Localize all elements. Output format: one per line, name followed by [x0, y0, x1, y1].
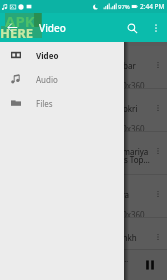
- button[interactable]: Audio: [0, 67, 124, 91]
- staticText: Video: [39, 21, 66, 35]
- staticText: Aankh: [113, 232, 137, 243]
- button[interactable]: Back: [0, 15, 25, 40]
- staticText: 2:44 PM: [140, 2, 165, 11]
- staticText: Dilbar: [113, 60, 136, 71]
- staticText: Video: [36, 50, 59, 61]
- staticText: 640x360: [113, 80, 145, 89]
- staticText: 97%: [118, 3, 130, 11]
- staticText: HERE: [0, 24, 34, 42]
- staticText: Chokri: [113, 103, 138, 114]
- button[interactable]: Files: [0, 91, 124, 115]
- button[interactable]: Pause: [139, 254, 161, 276]
- staticText: 640x360: [113, 209, 145, 218]
- button[interactable]: Aankh: [0, 218, 167, 261]
- staticText: Dilbar Dilbar Video Song: [54, 254, 132, 264]
- staticText: 640x360: [113, 123, 145, 132]
- staticText: Files: [36, 98, 53, 109]
- button[interactable]: More options: [150, 218, 167, 261]
- staticText: Tera: [113, 189, 130, 200]
- button[interactable]: Video: [0, 43, 124, 67]
- staticText: Audio: [36, 74, 58, 85]
- button[interactable]: Tera: [0, 175, 167, 218]
- button[interactable]: Dilbar: [0, 46, 167, 89]
- staticText: APK: [5, 11, 35, 31]
- staticText: 640x360: [113, 252, 145, 261]
- button[interactable]: Search: [119, 15, 145, 41]
- button[interactable]: Chokri: [0, 89, 167, 132]
- button[interactable]: Kamariya Hits Top Songs Se...: [0, 132, 167, 175]
- button[interactable]: More options: [145, 17, 167, 39]
- staticText: Kamariya Hits Top Songs Se...: [113, 146, 150, 165]
